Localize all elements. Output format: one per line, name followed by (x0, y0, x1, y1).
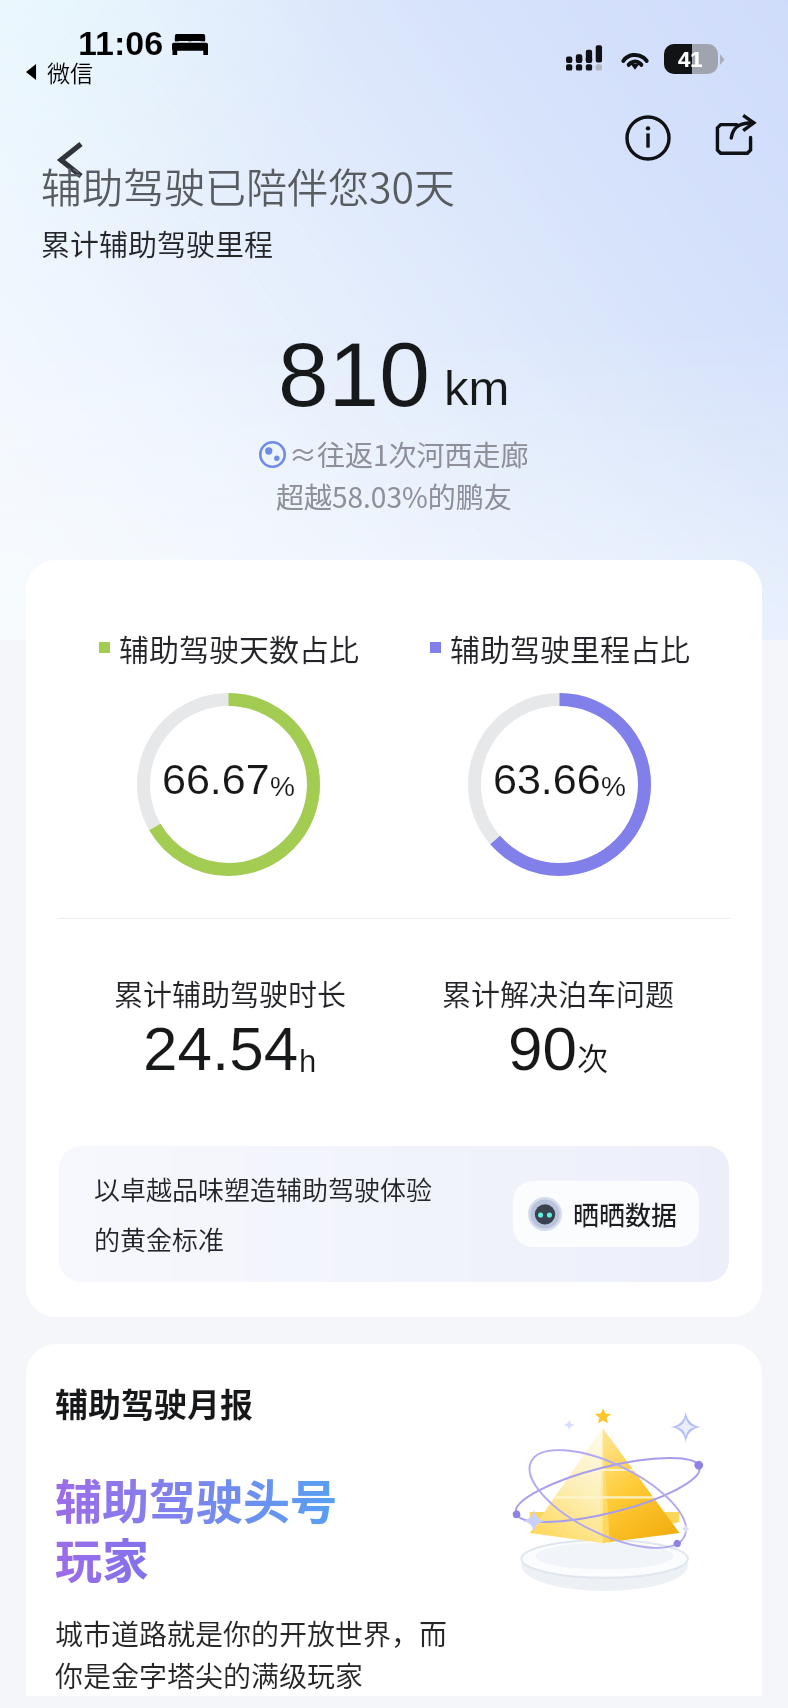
staticText: 玩家 (55, 1523, 149, 1591)
staticText: 辅助驾驶月报 (55, 1379, 253, 1427)
staticText: h (299, 1044, 317, 1079)
staticText: 你是金字塔尖的满级玩家 (55, 1655, 364, 1696)
staticText: 累计辅助驾驶里程 (41, 222, 274, 264)
staticText: 810 (278, 324, 430, 426)
staticText: % (601, 771, 626, 802)
staticText: 累计辅助驾驶时长 (114, 972, 347, 1014)
staticText: 超越58.03%的鹏友 (276, 476, 512, 517)
button[interactable]: 晒晒数据 (513, 1181, 699, 1247)
staticText: 城市道路就是你的开放世界，而 (55, 1613, 448, 1654)
staticText: 辅助驾驶已陪伴您30天 (41, 155, 456, 214)
staticText: 辅助驾驶天数占比 (119, 626, 359, 669)
staticText: 辅助驾驶里程占比 (450, 626, 690, 669)
staticText: 微信 (47, 55, 93, 88)
staticText: 以卓越品味塑造辅助驾驶体验 (94, 1170, 433, 1208)
staticText: 的黄金标准 (94, 1220, 225, 1258)
staticText: 90 (508, 1014, 577, 1083)
staticText: % (270, 771, 295, 802)
staticText: 次 (577, 1034, 608, 1079)
button[interactable]: Info (620, 110, 676, 166)
staticText: 辅助驾驶头号 (55, 1464, 337, 1532)
staticText: 66.67 (162, 755, 270, 803)
staticText: 晒晒数据 (573, 1195, 678, 1233)
staticText: 24.54 (143, 1014, 299, 1083)
staticText: 41 (678, 47, 703, 72)
button[interactable]: Back (38, 127, 104, 193)
staticText: 63.66 (493, 755, 601, 803)
staticText: 累计解决泊车问题 (442, 972, 675, 1014)
staticText: ≈往返1次河西走廊 (289, 434, 529, 475)
button[interactable]: Share (706, 110, 762, 166)
staticText: 11:06 (78, 24, 164, 62)
staticText: km (444, 361, 510, 416)
